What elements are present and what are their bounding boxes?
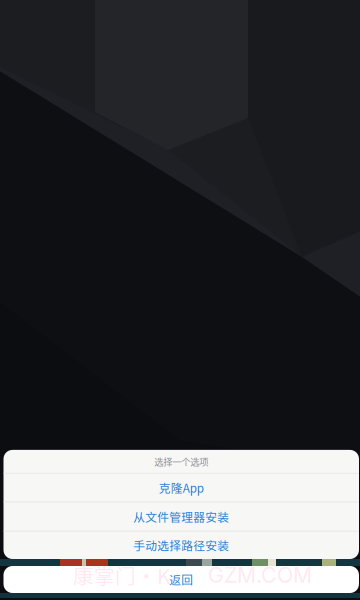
staticText: 选择一个选项: [154, 455, 208, 468]
button[interactable]: 手动选择路径安装: [3, 531, 359, 559]
button[interactable]: 克隆App: [3, 474, 359, 502]
staticText: 克隆App: [159, 479, 204, 496]
staticText: 从文件管理器安装: [133, 508, 229, 525]
button[interactable]: 从文件管理器安装: [3, 502, 359, 531]
staticText: GZM.COM: [208, 562, 312, 588]
staticText: 返回: [169, 571, 193, 588]
staticText: 手动选择路径安装: [133, 537, 229, 554]
button[interactable]: 返回: [3, 566, 359, 593]
staticText: 康掌门·K: [73, 560, 170, 590]
